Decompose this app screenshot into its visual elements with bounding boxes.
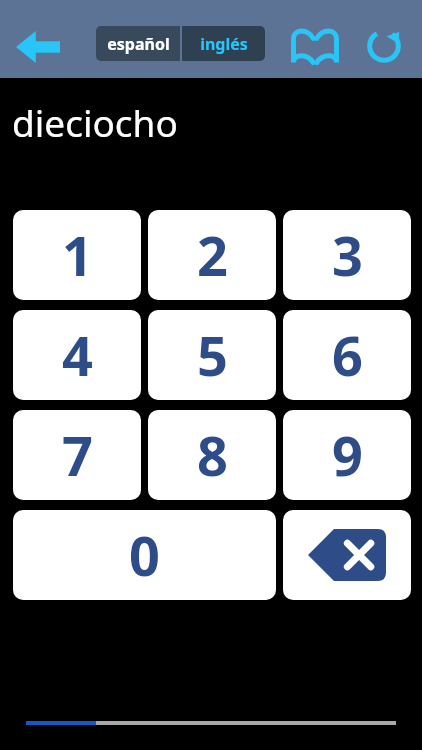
- staticText: 7: [62, 418, 93, 492]
- button[interactable]: 8: [148, 410, 276, 500]
- button[interactable]: 6: [283, 310, 411, 400]
- button[interactable]: Dictionary: [286, 20, 344, 72]
- staticText: 5: [197, 318, 228, 392]
- staticText: 0: [129, 518, 160, 592]
- button[interactable]: 1: [13, 210, 141, 300]
- staticText: 3: [332, 218, 363, 292]
- button[interactable]: 3: [283, 210, 411, 300]
- button[interactable]: 0: [13, 510, 276, 600]
- staticText: 9: [332, 418, 363, 492]
- staticText: español: [107, 33, 170, 55]
- staticText: 6: [332, 318, 363, 392]
- button[interactable]: 9: [283, 410, 411, 500]
- staticText: 8: [197, 418, 228, 492]
- staticText: 2: [197, 218, 228, 292]
- button[interactable]: 7: [13, 410, 141, 500]
- staticText: 1: [62, 218, 93, 292]
- button[interactable]: Backspace: [283, 510, 411, 600]
- button[interactable]: inglés: [182, 26, 265, 61]
- button[interactable]: Back: [6, 22, 70, 72]
- staticText: dieciocho: [12, 97, 178, 147]
- button[interactable]: 5: [148, 310, 276, 400]
- staticText: inglés: [200, 33, 248, 55]
- button[interactable]: 4: [13, 310, 141, 400]
- button[interactable]: Refresh: [356, 20, 412, 72]
- staticText: 4: [62, 318, 93, 392]
- button[interactable]: 2: [148, 210, 276, 300]
- button[interactable]: español: [96, 26, 180, 61]
